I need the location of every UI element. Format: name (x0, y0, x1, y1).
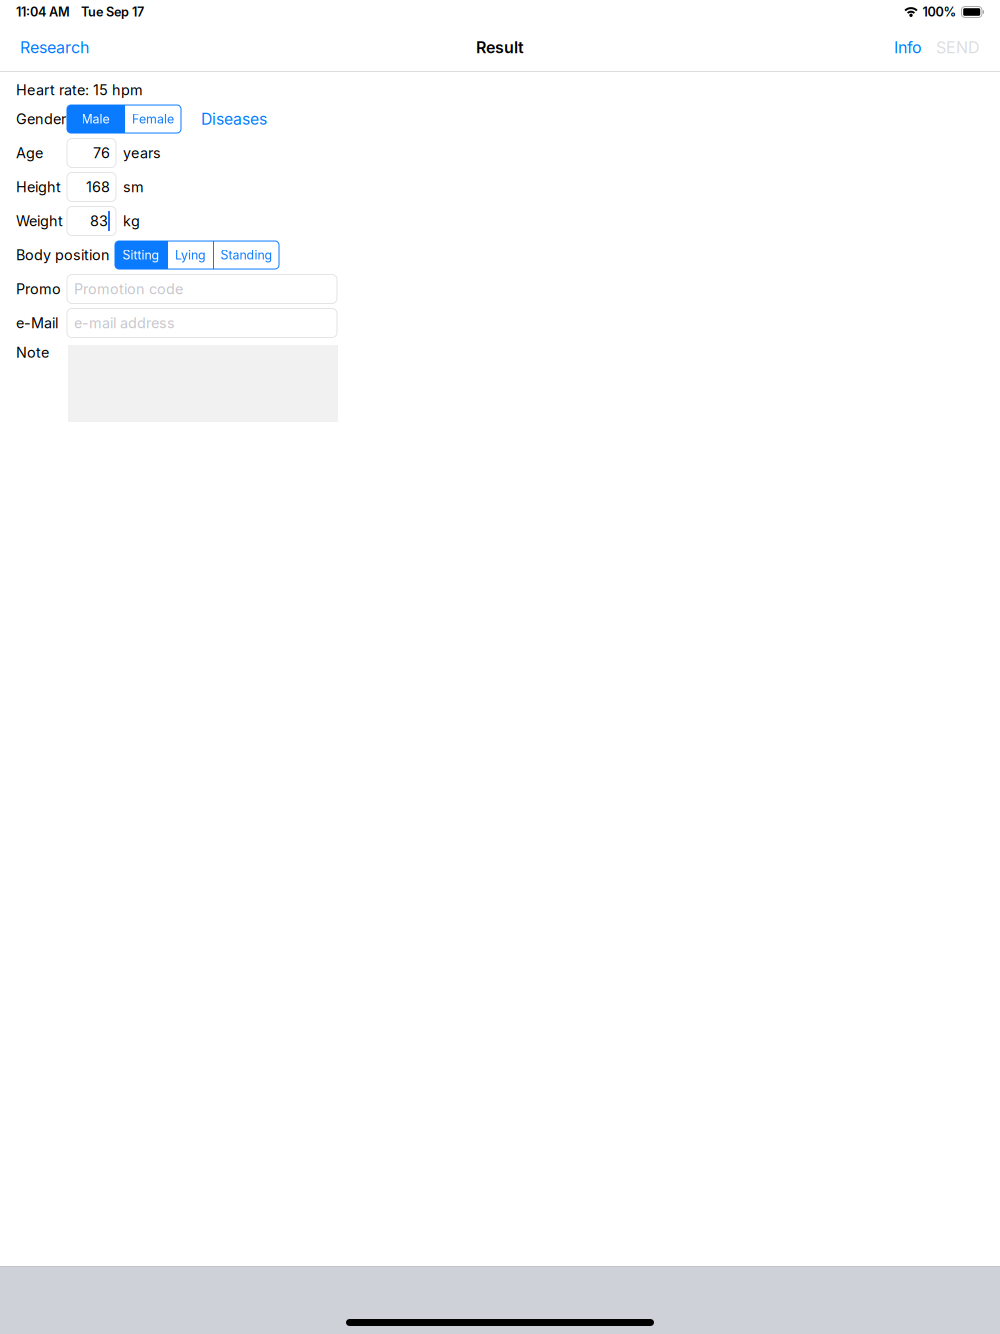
staticText: Lying (175, 247, 206, 262)
staticText: Age (16, 144, 43, 162)
staticText: 168 (86, 178, 110, 196)
staticText: 76 (93, 144, 110, 162)
button[interactable]: Height in cm (67, 172, 116, 201)
button[interactable]: Age in years (67, 138, 116, 167)
button[interactable]: e-mail address (67, 308, 337, 337)
button[interactable]: Promotion code (67, 274, 337, 303)
staticText: Height (16, 178, 61, 196)
staticText: Female (132, 111, 174, 126)
staticText: Info (894, 38, 922, 57)
staticText: Body position (16, 246, 110, 264)
staticText: Tue Sep 17 (81, 4, 144, 20)
staticText: Sitting (122, 247, 159, 262)
staticText: sm (123, 178, 144, 196)
staticText: Male (81, 111, 109, 126)
button[interactable]: Lying (168, 241, 213, 269)
button[interactable]: Standing (214, 241, 279, 269)
staticText: years (123, 144, 161, 162)
staticText: kg (123, 212, 140, 230)
staticText: Promo (16, 280, 61, 298)
button[interactable]: Research (20, 27, 89, 68)
staticText: Research (20, 38, 89, 57)
button[interactable]: SEND (936, 27, 980, 68)
button[interactable]: Diseases (201, 109, 267, 128)
staticText: Note (16, 344, 49, 361)
staticText: Standing (220, 247, 272, 262)
staticText: Weight (16, 212, 63, 230)
button[interactable]: Weight in kg (67, 206, 116, 235)
staticText: 11:04 AM (16, 4, 70, 20)
staticText: Gender (16, 110, 66, 128)
staticText: Result (476, 38, 524, 57)
staticText: 83 (90, 212, 108, 230)
button[interactable]: Info (894, 27, 922, 68)
staticText: e-mail address (74, 314, 175, 332)
staticText: e-Mail (16, 314, 58, 332)
staticText: SEND (936, 38, 980, 57)
button[interactable]: Female (125, 105, 181, 133)
staticText: Diseases (201, 109, 267, 128)
staticText: 100% (922, 4, 956, 20)
button[interactable]: Male (67, 105, 124, 133)
button[interactable]: Sitting (115, 241, 167, 269)
staticText: Promotion code (74, 280, 183, 298)
staticText: Heart rate: 15 hpm (16, 81, 143, 99)
